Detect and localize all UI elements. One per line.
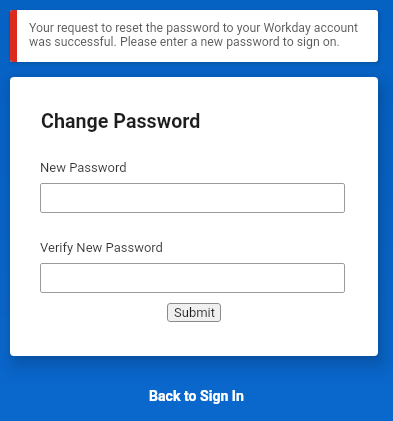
staticText: Your request to reset the password to yo… xyxy=(29,21,359,35)
button[interactable]: Back to Sign In xyxy=(143,386,250,407)
staticText: New Password xyxy=(40,160,127,175)
button[interactable]: Submit xyxy=(167,303,221,322)
staticText: was successful. Please enter a new passw… xyxy=(29,35,340,49)
staticText: Change Password xyxy=(41,110,201,133)
staticText: Submit xyxy=(174,305,215,320)
staticText: Back to Sign In xyxy=(149,388,244,405)
staticText: Verify New Password xyxy=(40,240,163,255)
button[interactable] xyxy=(40,263,345,293)
button[interactable] xyxy=(40,183,345,213)
